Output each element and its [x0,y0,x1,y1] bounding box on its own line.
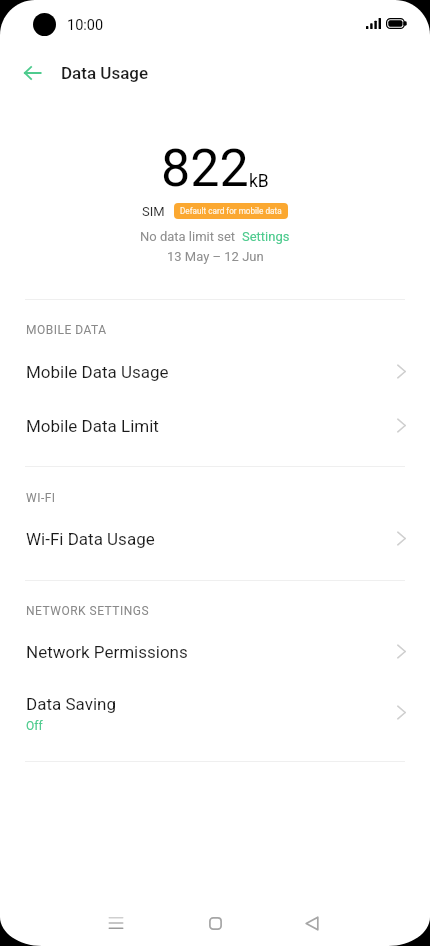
staticText: Data Usage [61,63,149,83]
staticText: 822 [161,138,249,199]
staticText: MOBILE DATA [26,323,107,337]
staticText: WI-FI [26,491,56,505]
staticText: No data limit set [140,229,236,244]
button[interactable]: Network Permissions [0,627,430,677]
staticText: Network Permissions [26,642,188,662]
button[interactable]: Recent apps [92,899,140,946]
staticText: Data Saving [26,694,116,714]
button[interactable]: Home [191,899,239,946]
button[interactable]: Mobile Data Usage [0,347,430,397]
staticText: Settings [242,229,290,244]
button[interactable]: Mobile Data Limit [0,401,430,451]
button[interactable]: Default card for mobile data [174,203,288,219]
staticText: Default card for mobile data [180,206,282,216]
button[interactable]: Wi-Fi Data Usage [0,514,430,564]
staticText: kB [249,171,269,192]
button[interactable]: Back [288,899,336,946]
staticText: Mobile Data Limit [26,416,159,436]
staticText: 13 May – 12 Jun [167,249,264,264]
button[interactable]: Settings [242,229,290,244]
button[interactable]: Data Saving [0,678,430,748]
staticText: 10:00 [67,17,104,34]
staticText: SIM [142,204,165,219]
staticText: Wi-Fi Data Usage [26,529,155,549]
staticText: Mobile Data Usage [26,362,169,382]
staticText: NETWORK SETTINGS [26,604,150,618]
staticText: Off [26,719,43,733]
button[interactable]: Back [13,54,51,92]
